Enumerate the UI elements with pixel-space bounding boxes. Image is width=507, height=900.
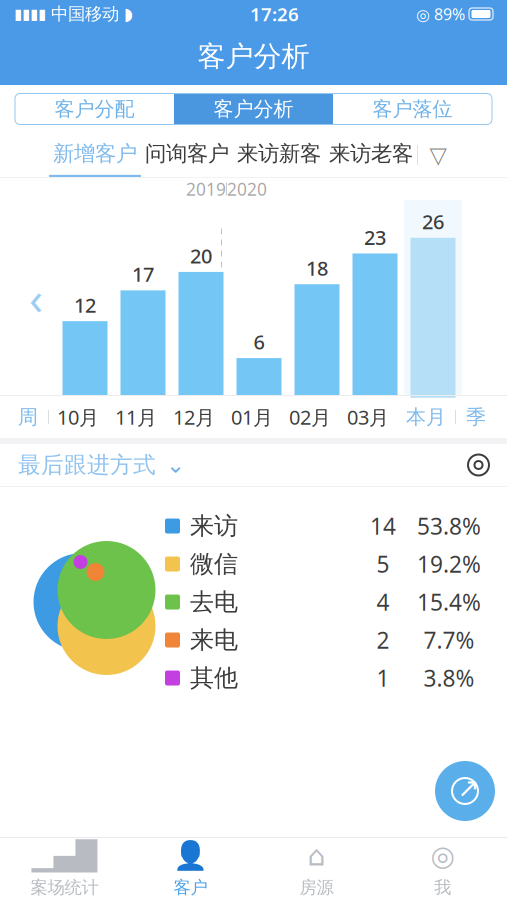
staticText: ◗ — [124, 4, 133, 24]
staticText: 客户 — [173, 877, 207, 898]
staticText: 2019 — [186, 177, 226, 200]
button[interactable]: 本月 — [397, 405, 455, 429]
staticText: 2 — [376, 625, 389, 655]
staticText: 其他 — [190, 663, 238, 693]
staticText: ↗ — [457, 773, 479, 803]
staticText: 11月 — [115, 404, 157, 430]
button[interactable]: 设置 — [468, 454, 489, 475]
button[interactable]: ◎ — [379, 838, 505, 900]
button[interactable]: 来访新客 — [233, 133, 325, 177]
button[interactable]: 问询客户 — [141, 133, 233, 177]
staticText: ⌂ — [307, 840, 325, 872]
button[interactable]: ▁▄█ — [1, 838, 127, 900]
staticText: 18 — [306, 255, 328, 281]
staticText: ◎ 89% — [416, 3, 465, 25]
staticText: 10月 — [57, 404, 99, 430]
staticText: 房源 — [299, 877, 333, 898]
staticText: 客户落位 — [372, 97, 452, 121]
button[interactable]: 02月 — [281, 404, 339, 430]
staticText: 17:26 — [250, 2, 299, 26]
staticText: 26 — [422, 208, 444, 235]
staticText: 4 — [376, 587, 389, 617]
button[interactable]: 03月 — [339, 404, 397, 430]
staticText: 来访 — [190, 511, 238, 541]
staticText: 来访老客 — [329, 141, 413, 167]
staticText: 最后跟进方式 — [18, 451, 156, 479]
staticText: 👤 — [173, 840, 208, 872]
staticText: 周 — [18, 405, 38, 429]
staticText: 02月 — [289, 404, 331, 430]
staticText: 12 — [74, 292, 96, 318]
staticText: 14 — [370, 511, 396, 541]
staticText: 7.7% — [423, 625, 474, 655]
staticText: 来电 — [190, 625, 238, 655]
staticText: 案场统计 — [30, 877, 98, 898]
staticText: 客户分析 — [213, 97, 293, 121]
staticText: ▁▄█ — [31, 840, 97, 872]
staticText: 03月 — [347, 404, 389, 430]
staticText: ◎ — [430, 840, 454, 872]
staticText: 01月 — [231, 404, 273, 430]
staticText: 6 — [253, 328, 264, 355]
staticText: 3.8% — [423, 663, 474, 693]
staticText: 问询客户 — [145, 141, 229, 167]
staticText: 20 — [190, 242, 212, 269]
button[interactable]: 来访老客 — [325, 133, 417, 177]
button[interactable]: 客户分配 — [15, 93, 174, 124]
button[interactable]: 👤 — [127, 838, 253, 900]
button[interactable]: 最后跟进方式 — [18, 451, 185, 479]
button[interactable]: 上一页 — [16, 200, 56, 395]
staticText: 53.8% — [417, 511, 481, 541]
staticText: ▽ — [429, 142, 446, 168]
staticText: ‹ — [29, 267, 43, 328]
staticText: 客户分配 — [54, 97, 134, 121]
staticText: 我 — [434, 877, 451, 898]
staticText: 2020 — [227, 177, 267, 200]
button[interactable]: 10月 — [49, 404, 107, 430]
button[interactable]: 客户落位 — [333, 93, 492, 124]
staticText: 来访新客 — [237, 141, 321, 167]
button[interactable]: 筛选 — [418, 133, 458, 177]
staticText: 本月 — [406, 405, 446, 429]
staticText: ⌄ — [166, 452, 185, 478]
staticText: 5 — [376, 549, 389, 579]
staticText: 季 — [466, 405, 486, 429]
staticText: 19.2% — [417, 549, 481, 579]
staticText: 新增客户 — [53, 141, 137, 167]
staticText: 15.4% — [417, 587, 481, 617]
button[interactable]: 12月 — [165, 404, 223, 430]
button[interactable]: ⌂ — [253, 838, 379, 900]
button[interactable]: 季 — [456, 405, 496, 429]
staticText: 客户分析 — [197, 39, 309, 74]
button[interactable]: 周 — [8, 405, 48, 429]
staticText: 中国移动 — [46, 3, 124, 25]
staticText: 微信 — [190, 549, 238, 579]
button[interactable]: 分享 — [435, 761, 495, 821]
button[interactable]: 01月 — [223, 404, 281, 430]
staticText: 23 — [364, 224, 386, 250]
staticText: 12月 — [173, 404, 215, 430]
staticText: ▮▮▮▮ — [14, 6, 46, 22]
button[interactable]: 新增客户 — [49, 133, 141, 177]
staticText: 去电 — [190, 587, 238, 617]
button[interactable]: 客户分析 — [174, 93, 333, 124]
staticText: 17 — [132, 261, 154, 287]
staticText: 1 — [376, 663, 389, 693]
button[interactable]: 11月 — [107, 404, 165, 430]
